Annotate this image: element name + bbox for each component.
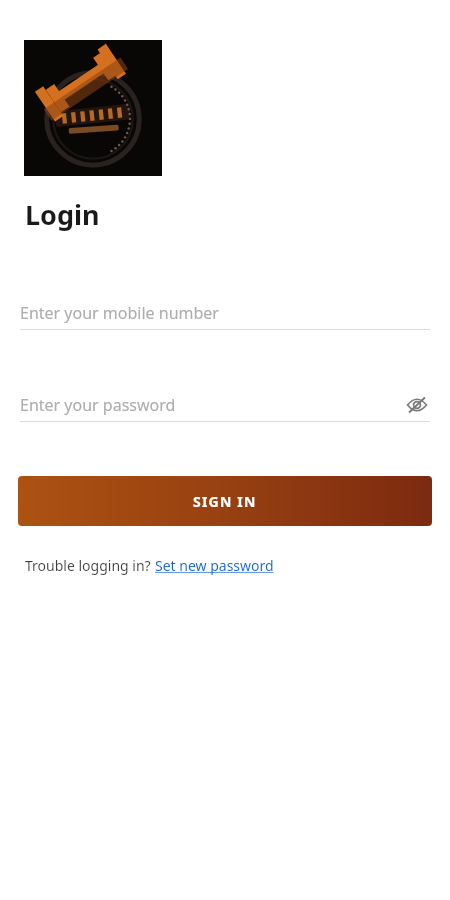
staticText: Enter your password: [20, 394, 176, 416]
staticText: SIGN IN: [193, 492, 257, 511]
button[interactable]: Show password: [404, 392, 430, 418]
button[interactable]: Enter your password: [20, 392, 430, 418]
button[interactable]: Enter your mobile number: [20, 300, 430, 326]
button[interactable]: Set new password: [155, 556, 274, 575]
staticText: Trouble logging in?: [25, 556, 155, 575]
staticText: Login: [25, 196, 100, 233]
staticText: Set new password: [155, 556, 274, 575]
button[interactable]: SIGN IN: [18, 476, 432, 526]
staticText: Enter your mobile number: [20, 302, 219, 324]
